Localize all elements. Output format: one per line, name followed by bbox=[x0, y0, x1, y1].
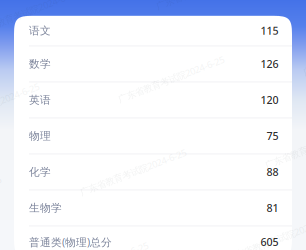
staticText: 120 bbox=[260, 93, 278, 107]
button[interactable]: 语文 bbox=[14, 16, 292, 46]
button[interactable]: 化学 bbox=[14, 154, 292, 190]
staticText: 广东省教育考试院2024-6-25 bbox=[0, 100, 42, 112]
staticText: 广东省教育考试院2024-6-25 bbox=[223, 232, 306, 244]
staticText: 化学 bbox=[29, 165, 51, 178]
button[interactable]: 物理 bbox=[14, 118, 292, 154]
staticText: 75 bbox=[266, 129, 278, 143]
staticText: 115 bbox=[260, 24, 278, 38]
staticText: 广东省教育考试院2024-6-25 bbox=[114, 73, 227, 85]
staticText: 数学 bbox=[29, 57, 51, 70]
button[interactable]: 普通类(物理)总分 bbox=[14, 226, 292, 250]
staticText: 语文 bbox=[29, 24, 51, 37]
staticText: 广东省教育考试院2024-6-25 bbox=[299, 46, 306, 58]
button[interactable]: 生物学 bbox=[14, 190, 292, 226]
staticText: 生物学 bbox=[29, 201, 62, 214]
staticText: 英语 bbox=[29, 93, 51, 106]
staticText: 605 bbox=[260, 235, 278, 249]
staticText: 普通类(物理)总分 bbox=[29, 235, 112, 249]
staticText: 81 bbox=[266, 201, 278, 215]
staticText: 物理 bbox=[29, 129, 51, 142]
button[interactable]: 英语 bbox=[14, 82, 292, 118]
staticText: 广东省教育考试院2024-6-25 bbox=[261, 139, 306, 151]
staticText: 广东省教育考试院2024-6-25 bbox=[0, 7, 80, 19]
button[interactable]: 数学 bbox=[14, 46, 292, 82]
staticText: 126 bbox=[260, 57, 278, 71]
staticText: 88 bbox=[266, 165, 278, 179]
